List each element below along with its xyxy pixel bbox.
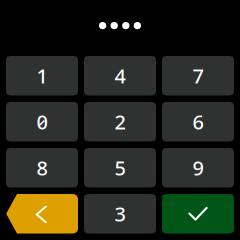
button[interactable]: Confirm (162, 194, 234, 233)
staticText: 9 (192, 154, 203, 181)
staticText: 0 (36, 108, 47, 135)
staticText: 4 (114, 62, 125, 89)
staticText: 5 (114, 154, 125, 181)
button[interactable]: 8 (6, 148, 78, 187)
button[interactable]: 6 (162, 102, 234, 141)
button[interactable]: 4 (84, 56, 156, 95)
staticText: 1 (36, 62, 47, 89)
button[interactable]: 5 (84, 148, 156, 187)
button[interactable]: 0 (6, 102, 78, 141)
button[interactable]: 9 (162, 148, 234, 187)
staticText: 6 (192, 108, 203, 135)
button[interactable]: 3 (84, 194, 156, 233)
staticText: 3 (114, 200, 125, 227)
button[interactable]: 1 (6, 56, 78, 95)
staticText: 7 (192, 62, 203, 89)
button[interactable]: Delete (6, 194, 78, 233)
button[interactable]: 7 (162, 56, 234, 95)
staticText: 8 (36, 154, 47, 181)
button[interactable]: 2 (84, 102, 156, 141)
staticText: 2 (114, 108, 125, 135)
